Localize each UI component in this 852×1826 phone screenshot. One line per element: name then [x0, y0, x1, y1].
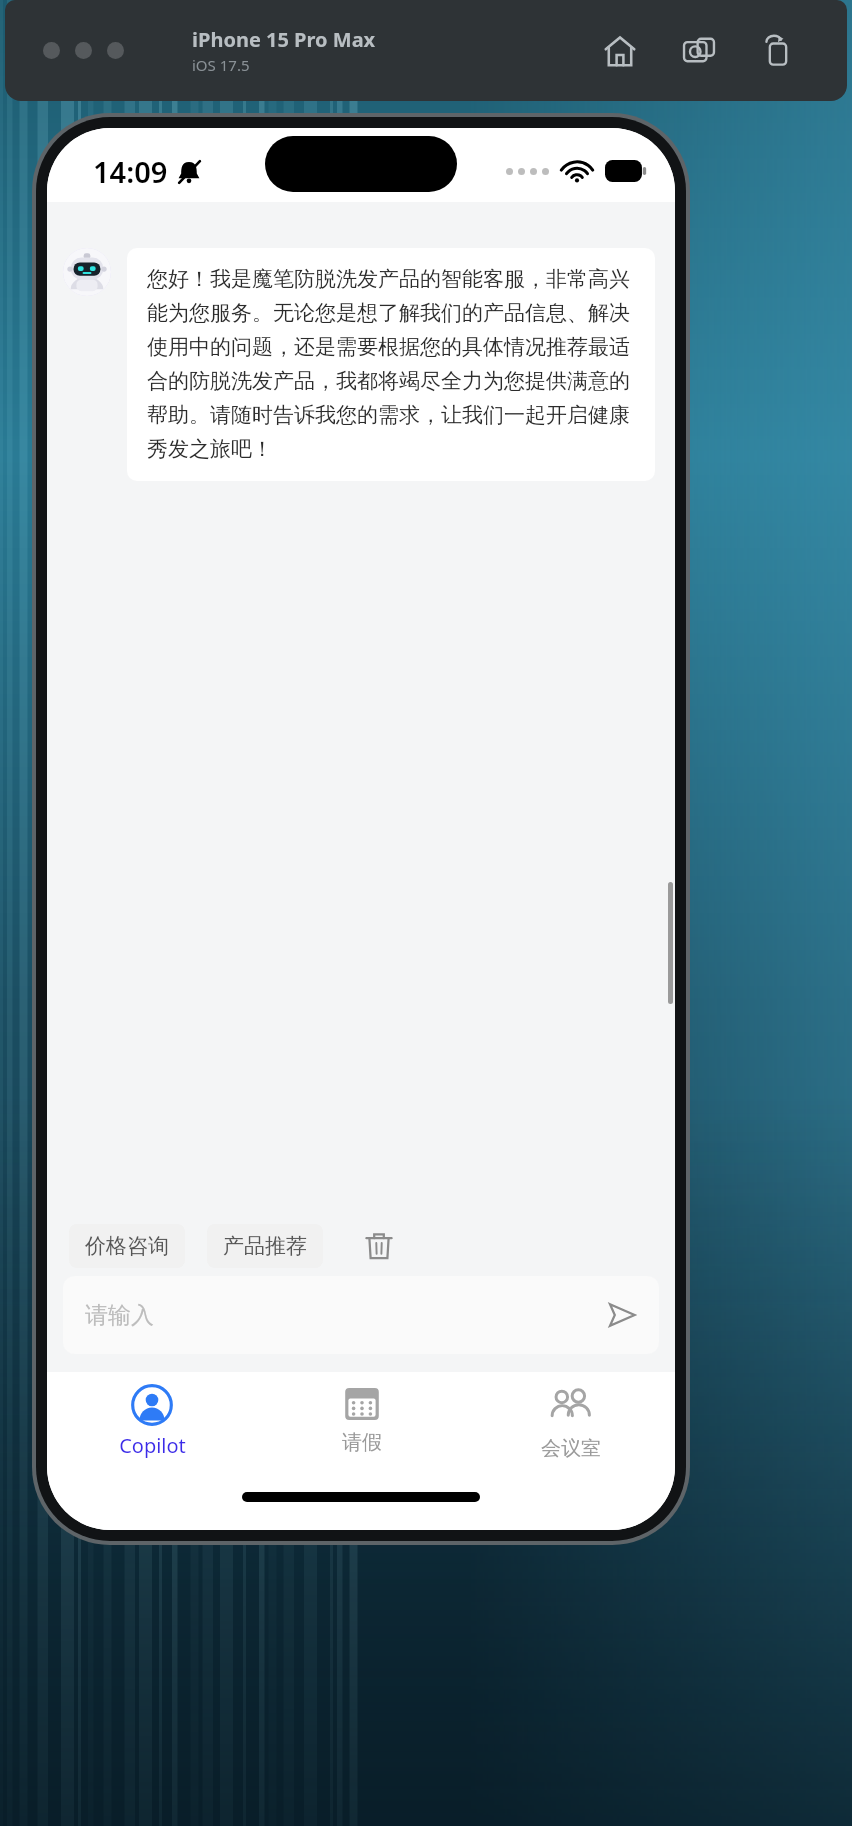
staticText: 请假	[342, 1430, 382, 1455]
button[interactable]: Send	[599, 1292, 645, 1338]
button[interactable]: 价格咨询	[69, 1224, 185, 1268]
staticText: 14:09	[93, 152, 168, 191]
staticText: iOS 17.5	[192, 55, 250, 75]
button[interactable]: Rotate	[761, 34, 795, 68]
button[interactable]: 请假	[257, 1372, 466, 1484]
button[interactable]: 会议室	[466, 1372, 675, 1484]
staticText: 您好！我是魔笔防脱洗发产品的智能客服，非常高兴能为您服务。无论您是想了解我们的产…	[147, 266, 635, 463]
button[interactable]: Copilot	[47, 1372, 257, 1484]
staticText: iPhone 15 Pro Max	[192, 26, 376, 53]
staticText: 请输入	[85, 1301, 154, 1330]
staticText: Copilot	[119, 1432, 186, 1459]
button[interactable]: 您好！我是魔笔防脱洗发产品的智能客服，非常高兴能为您服务。无论您是想了解我们的产…	[127, 248, 655, 481]
button[interactable]: 产品推荐	[207, 1224, 323, 1268]
button[interactable]: Screenshot	[682, 34, 716, 68]
staticText: 会议室	[541, 1436, 601, 1461]
button[interactable]: Clear conversation	[357, 1224, 401, 1268]
staticText: 价格咨询	[85, 1233, 169, 1259]
button[interactable]: Home	[603, 34, 637, 68]
button[interactable]: 请输入	[63, 1276, 659, 1354]
staticText: 产品推荐	[223, 1233, 307, 1259]
